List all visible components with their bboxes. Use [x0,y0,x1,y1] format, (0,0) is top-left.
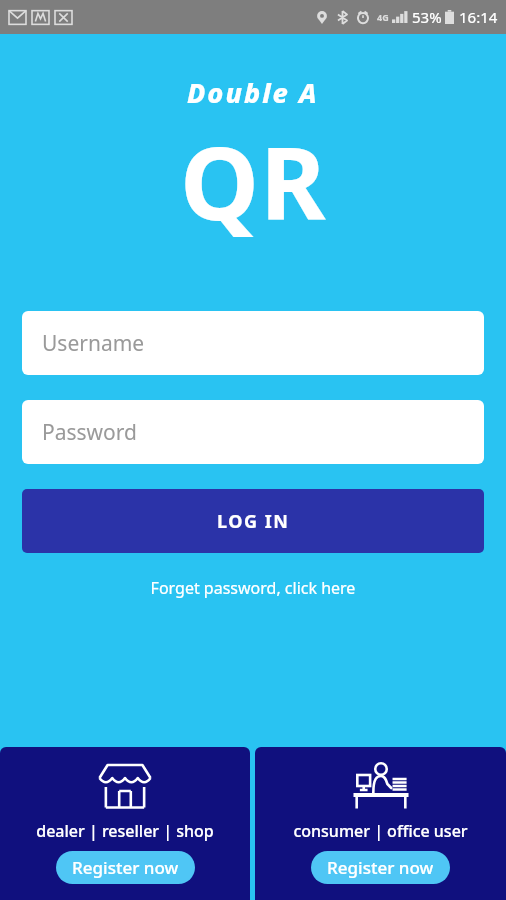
other: Consumer, office user [349,760,413,810]
staticText: Register now [327,856,434,879]
button[interactable]: Register now [311,851,450,884]
staticText: 16:14 [459,7,498,27]
staticText: Password [42,418,137,447]
button[interactable]: Username [22,311,484,375]
staticText: Register now [72,856,179,879]
button[interactable]: Consumer, office user [255,747,506,900]
button[interactable]: Forget password, click here [0,573,506,603]
staticText: Double A [187,74,319,111]
staticText: Username [42,329,145,358]
staticText: consumer | office user [293,820,468,842]
staticText: LOG IN [217,509,290,534]
staticText: 4G [377,11,389,23]
staticText: dealer | reseller | shop [36,820,214,842]
other: Dealer, reseller, shop [96,760,154,810]
staticText: QR [180,113,327,249]
button[interactable]: LOG IN [22,489,484,553]
button[interactable]: Password [22,400,484,464]
button[interactable]: Register now [56,851,195,884]
button[interactable]: Dealer, reseller, shop [0,747,250,900]
staticText: 53% [412,7,442,27]
